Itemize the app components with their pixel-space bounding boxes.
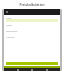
staticText: Preiskalkulation — [0, 3, 64, 7]
button[interactable]: Nav item — [46, 69, 48, 71]
staticText: Artikel — [6, 17, 12, 19]
button[interactable]: App bar — [4, 9, 60, 15]
staticText: Aufschlag — [6, 36, 15, 38]
staticText: Menge — [6, 24, 12, 26]
button[interactable]: Nav item — [31, 69, 33, 71]
button[interactable]: Nav item — [17, 69, 19, 71]
staticText: Einkaufspreis — [6, 30, 18, 32]
